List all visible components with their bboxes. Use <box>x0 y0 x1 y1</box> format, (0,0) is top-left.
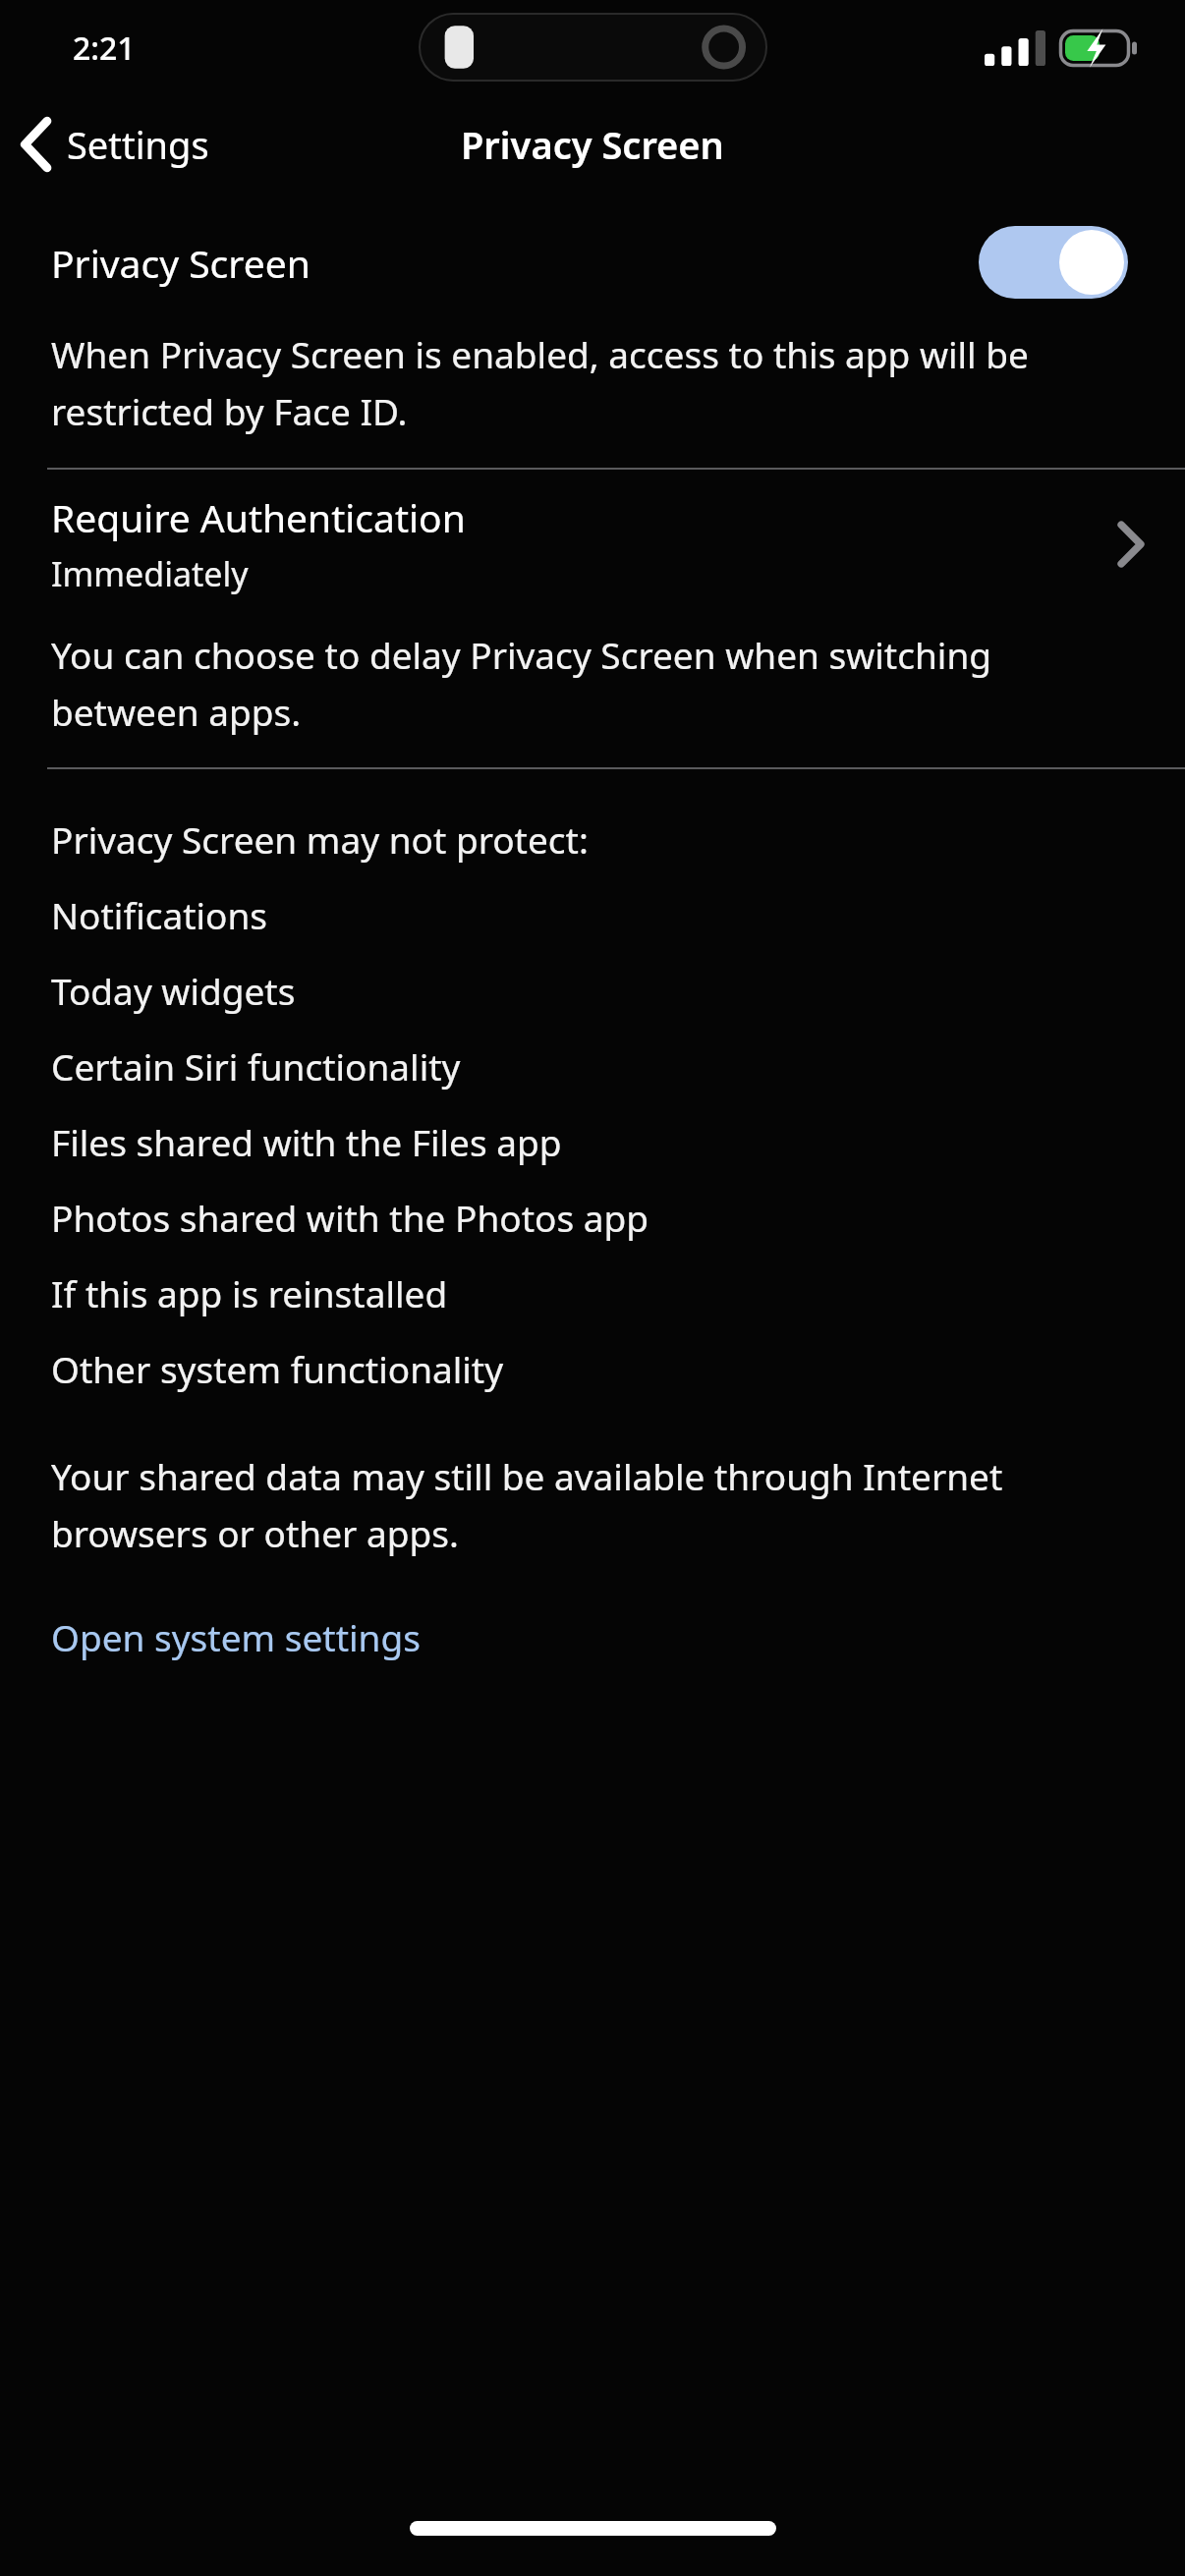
staticText: Certain Siri functionality <box>51 1041 461 1091</box>
button[interactable]: Open system settings <box>0 1608 472 1669</box>
button[interactable]: Privacy Screen <box>0 221 1185 304</box>
staticText: Privacy Screen <box>51 237 979 289</box>
staticText: Files shared with the Files app <box>51 1117 562 1166</box>
button[interactable]: Settings <box>0 108 225 181</box>
staticText: Your shared data may still be available … <box>51 1451 1146 1557</box>
staticText: Immediately <box>51 551 249 596</box>
staticText: Require Authentication <box>51 491 466 543</box>
staticText: When Privacy Screen is enabled, access t… <box>51 329 1146 435</box>
staticText: Open system settings <box>51 1612 421 1661</box>
staticText: 2:21 <box>73 27 136 70</box>
staticText: Today widgets <box>51 966 296 1015</box>
staticText: Privacy Screen <box>461 119 724 170</box>
staticText: Notifications <box>51 890 268 939</box>
staticText: Privacy Screen may not protect: <box>51 814 589 864</box>
staticText: You can choose to delay Privacy Screen w… <box>51 630 1146 736</box>
button[interactable]: Privacy Screen toggle, on <box>979 226 1128 299</box>
staticText: Other system functionality <box>51 1344 504 1393</box>
staticText: Settings <box>67 119 209 170</box>
staticText: If this app is reinstalled <box>51 1268 448 1317</box>
button[interactable]: Require Authentication <box>0 470 1185 616</box>
staticText: Photos shared with the Photos app <box>51 1193 649 1242</box>
